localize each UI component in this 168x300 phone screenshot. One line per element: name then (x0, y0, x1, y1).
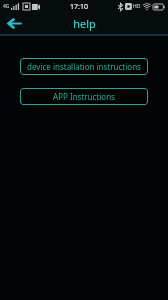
staticText: APP Instructions (53, 91, 115, 102)
button[interactable]: APP Instructions (20, 88, 148, 105)
staticText: 4G (3, 3, 10, 10)
staticText: device installation instructions (27, 61, 141, 72)
button[interactable]: Back (3, 13, 25, 34)
staticText: help (73, 16, 96, 31)
button[interactable]: device installation instructions (20, 58, 148, 75)
staticText: HD (133, 3, 141, 10)
staticText: 17:10 (70, 2, 88, 12)
